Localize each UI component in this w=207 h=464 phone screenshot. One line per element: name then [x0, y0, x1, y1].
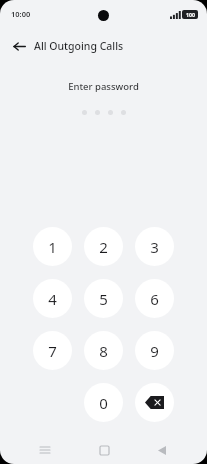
staticText: All Outgoing Calls	[34, 39, 124, 53]
staticText: Enter password	[0, 80, 207, 93]
button[interactable]: Recent apps	[32, 437, 58, 463]
button[interactable]: 3	[135, 227, 174, 266]
staticText: 2	[99, 237, 108, 257]
staticText: 100	[186, 11, 195, 18]
button[interactable]: Back	[149, 437, 175, 463]
staticText: 10:00	[11, 9, 31, 19]
staticText: 5	[99, 289, 108, 309]
button[interactable]: 7	[33, 331, 72, 370]
staticText: 0	[99, 393, 108, 413]
button[interactable]: Home	[91, 437, 117, 463]
staticText: 8	[99, 341, 108, 361]
button[interactable]: 1	[33, 227, 72, 266]
staticText: 3	[150, 237, 159, 257]
button[interactable]: 9	[135, 331, 174, 370]
button[interactable]: 6	[135, 279, 174, 318]
button[interactable]: 2	[84, 227, 123, 266]
staticText: 9	[150, 341, 159, 361]
button[interactable]: 8	[84, 331, 123, 370]
button[interactable]: Back	[7, 34, 31, 58]
staticText: 7	[48, 341, 57, 361]
staticText: 1	[48, 237, 57, 257]
button[interactable]: Delete	[135, 383, 174, 422]
button[interactable]: 0	[84, 383, 123, 422]
staticText: 4	[48, 289, 57, 309]
button[interactable]: 5	[84, 279, 123, 318]
button[interactable]: 4	[33, 279, 72, 318]
staticText: 6	[150, 289, 159, 309]
